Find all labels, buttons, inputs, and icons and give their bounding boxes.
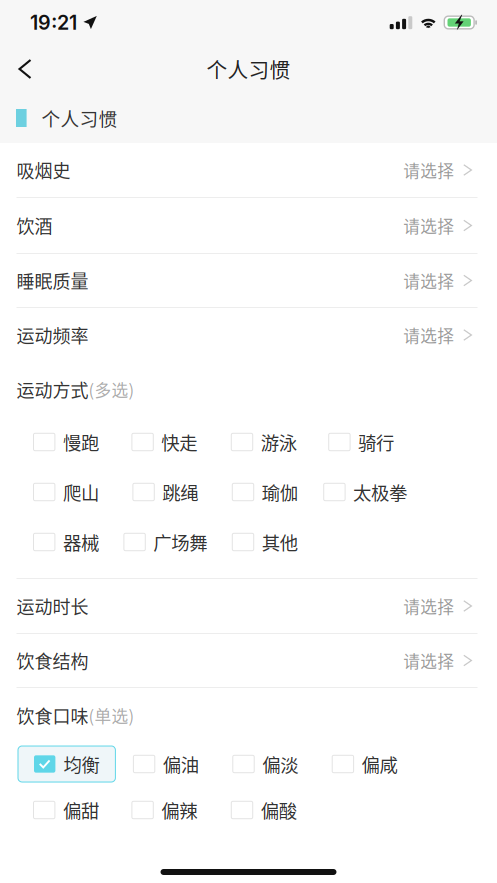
button[interactable]: 其他: [232, 531, 298, 553]
staticText: 跳绳: [162, 479, 198, 505]
staticText: 请选择: [403, 648, 454, 672]
button[interactable]: 饮酒: [0, 198, 497, 253]
staticText: 睡眠质量: [16, 267, 88, 294]
staticText: 太极拳: [353, 479, 407, 505]
button[interactable]: 偏油: [133, 753, 199, 775]
button[interactable]: 饮食结构: [0, 634, 497, 687]
staticText: 偏油: [163, 751, 199, 777]
button[interactable]: 器械: [33, 531, 99, 553]
staticText: 个人习惯: [206, 54, 290, 84]
button[interactable]: 慢跑: [33, 431, 99, 453]
staticText: 个人习惯: [42, 104, 118, 131]
staticText: 其他: [262, 529, 298, 555]
button[interactable]: 偏酸: [231, 799, 297, 821]
button[interactable]: Back: [0, 46, 50, 92]
staticText: 请选择: [403, 158, 454, 182]
button[interactable]: 偏甜: [33, 799, 99, 821]
staticText: 偏咸: [362, 751, 398, 777]
button[interactable]: 偏辣: [132, 799, 197, 821]
staticText: 骑行: [358, 429, 394, 455]
staticText: 偏淡: [262, 751, 298, 777]
staticText: 快走: [161, 429, 197, 455]
staticText: (单选): [88, 703, 134, 727]
staticText: 饮食口味: [16, 702, 88, 729]
staticText: 广场舞: [153, 529, 207, 555]
button[interactable]: 偏咸: [332, 753, 398, 775]
button[interactable]: 均衡: [18, 746, 115, 782]
staticText: 爬山: [63, 479, 99, 505]
staticText: 饮食结构: [16, 647, 88, 674]
button[interactable]: 睡眠质量: [0, 254, 497, 307]
staticText: 偏酸: [261, 797, 297, 823]
staticText: 游泳: [261, 429, 297, 455]
staticText: (多选): [88, 377, 134, 401]
staticText: 运动时长: [16, 593, 88, 619]
button[interactable]: 太极拳: [324, 481, 407, 503]
button[interactable]: 跳绳: [133, 481, 198, 503]
button[interactable]: 运动频率: [0, 308, 497, 362]
staticText: 运动方式: [16, 376, 88, 403]
staticText: 请选择: [403, 594, 454, 618]
staticText: 吸烟史: [16, 157, 70, 183]
staticText: 19:21: [30, 11, 77, 34]
staticText: 均衡: [63, 751, 99, 777]
button[interactable]: 运动时长: [0, 579, 497, 633]
staticText: 偏甜: [63, 797, 99, 823]
button[interactable]: 瑜伽: [232, 481, 298, 503]
staticText: 请选择: [403, 323, 454, 347]
staticText: 慢跑: [63, 429, 99, 455]
staticText: 瑜伽: [262, 479, 298, 505]
staticText: 饮酒: [16, 212, 52, 239]
button[interactable]: 偏淡: [233, 753, 298, 775]
staticText: 运动频率: [16, 322, 88, 348]
button[interactable]: 骑行: [329, 431, 394, 453]
button[interactable]: 吸烟史: [0, 143, 497, 197]
button[interactable]: 广场舞: [124, 531, 207, 553]
staticText: 请选择: [403, 268, 454, 292]
staticText: 偏辣: [161, 797, 197, 823]
staticText: 请选择: [403, 213, 454, 237]
button[interactable]: 快走: [132, 431, 197, 453]
button[interactable]: 游泳: [231, 431, 297, 453]
staticText: 器械: [63, 529, 99, 555]
button[interactable]: 爬山: [33, 481, 99, 503]
